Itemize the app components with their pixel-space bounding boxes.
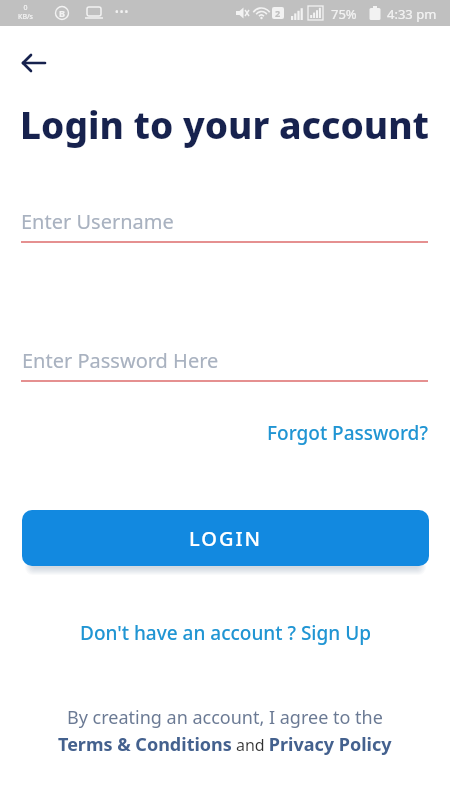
staticText: 0 KB/s <box>18 3 33 21</box>
staticText: By creating an account, I agree to the <box>67 705 383 730</box>
staticText: B <box>59 7 65 19</box>
staticText: ••• <box>115 5 130 19</box>
staticText: Forgot Password? <box>267 420 428 446</box>
staticText: Terms & Conditions and Privacy Policy <box>58 732 392 757</box>
button[interactable]: Don't have an account ? Sign Up <box>80 620 371 646</box>
button[interactable]: Terms & Conditions and Privacy Policy <box>58 732 392 757</box>
button[interactable]: Enter Password Here <box>0 342 450 382</box>
staticText: Enter Username <box>21 208 174 235</box>
button[interactable] <box>14 45 54 81</box>
staticText: Login to your account <box>20 99 430 149</box>
staticText: Don't have an account ? Sign Up <box>80 620 371 646</box>
staticText: LOGIN <box>189 525 263 552</box>
button[interactable]: LOGIN <box>22 510 429 566</box>
staticText: 75% <box>331 5 357 23</box>
staticText: 2 <box>275 7 281 19</box>
staticText: Enter Password Here <box>22 347 219 374</box>
staticText: 4:33 pm <box>387 5 437 23</box>
button[interactable]: Enter Username <box>0 203 450 243</box>
button[interactable]: Forgot Password? <box>267 420 428 446</box>
